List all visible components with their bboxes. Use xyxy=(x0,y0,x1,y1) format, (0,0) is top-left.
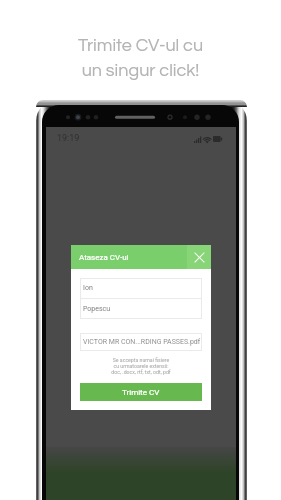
button[interactable]: Close xyxy=(187,245,211,269)
button[interactable]: Popescu xyxy=(80,299,202,319)
button[interactable]: Trimite CV xyxy=(80,383,202,401)
staticText: Ataseza CV-ul xyxy=(79,253,129,262)
staticText: Popescu xyxy=(83,305,111,313)
staticText: Trimite CV xyxy=(122,388,160,397)
staticText: Ion xyxy=(83,284,93,292)
staticText: VICTOR MR CON...RDING PASSES.pdf xyxy=(83,338,201,346)
staticText: Se accepta numai fisiere cu urmatoarele … xyxy=(80,357,202,375)
button[interactable]: Ion xyxy=(80,278,202,298)
button[interactable]: VICTOR MR CON...RDING PASSES.pdf xyxy=(80,333,202,351)
staticText: Trimite CV-ul cu un singur click! xyxy=(0,36,281,80)
staticText: 19:19 xyxy=(57,133,80,144)
